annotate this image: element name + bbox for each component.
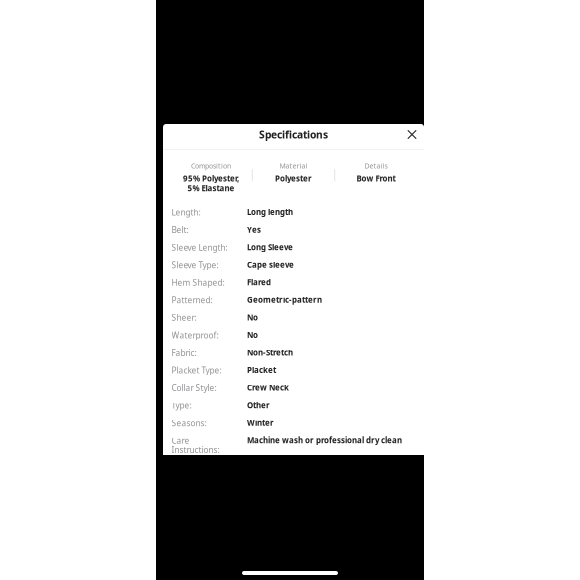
staticText: Crew Neck xyxy=(247,382,289,393)
staticText: No xyxy=(247,329,258,340)
staticText: Flared xyxy=(247,277,271,288)
staticText: Seasons: xyxy=(171,417,206,429)
staticText: Details xyxy=(365,161,388,171)
staticText: Sheer: xyxy=(171,312,196,323)
staticText: Specifications xyxy=(259,127,328,141)
staticText: 95% Polyester, xyxy=(183,173,239,184)
staticText: Instructions: xyxy=(171,444,219,455)
staticText: Long length xyxy=(247,207,293,217)
button[interactable]: Close xyxy=(402,125,421,144)
staticText: Care xyxy=(171,435,189,446)
staticText: Placket xyxy=(247,365,276,375)
staticText: Length: xyxy=(171,207,200,218)
staticText: Bow Front xyxy=(357,173,396,184)
staticText: 5% Elastane xyxy=(187,183,234,194)
staticText: Other xyxy=(247,400,270,410)
staticText: Composition xyxy=(191,161,231,171)
staticText: Fabric: xyxy=(171,347,196,358)
staticText: Material xyxy=(279,161,307,171)
staticText: Geometric-pattern xyxy=(247,294,322,305)
staticText: Winter xyxy=(247,417,274,428)
staticText: Type: xyxy=(171,400,191,411)
staticText: No xyxy=(247,312,258,323)
staticText: Placket Type: xyxy=(171,365,221,376)
staticText: Collar Style: xyxy=(171,382,216,393)
staticText: Yes xyxy=(247,224,261,235)
staticText: Polyester xyxy=(275,173,312,184)
staticText: Long Sleeve xyxy=(247,242,293,252)
staticText: Hem Shaped: xyxy=(171,277,224,288)
staticText: Sleeve Length: xyxy=(171,242,227,253)
staticText: Non-Stretch xyxy=(247,347,293,358)
staticText: Machine wash or professional dry clean xyxy=(247,435,402,446)
staticText: Waterproof: xyxy=(171,329,218,341)
staticText: Sleeve Type: xyxy=(171,259,218,271)
staticText: Cape sleeve xyxy=(247,259,294,270)
staticText: Belt: xyxy=(171,224,188,235)
staticText: Patterned: xyxy=(171,294,212,306)
